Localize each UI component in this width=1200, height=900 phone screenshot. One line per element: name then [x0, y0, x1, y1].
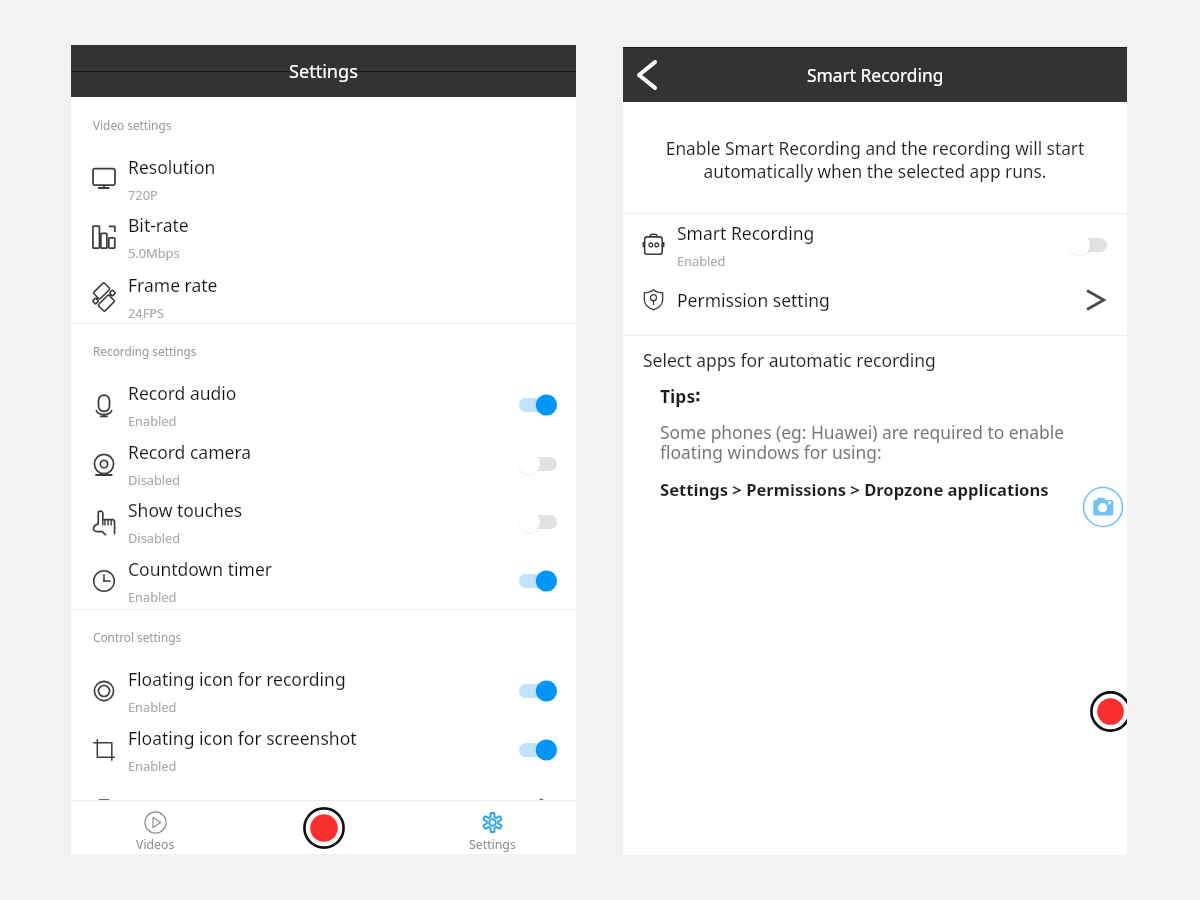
staticText: Videos: [136, 836, 175, 853]
staticText: Floating icon for screenshot: [128, 726, 357, 750]
staticText: Enabled: [128, 698, 177, 715]
staticText: Floating icon for recording: [128, 667, 346, 691]
button[interactable]: Floating icon for recording: [71, 661, 576, 720]
button[interactable]: [519, 680, 557, 702]
staticText: Some phones (eg: Huawei) are required to…: [660, 420, 1065, 465]
staticText: 720P: [128, 186, 158, 203]
staticText: Record camera: [128, 440, 252, 464]
button[interactable]: Camera: [1083, 487, 1123, 527]
staticText: Smart Recording: [807, 63, 944, 87]
button[interactable]: Resolution: [71, 149, 576, 208]
button[interactable]: Record: [303, 807, 345, 849]
button[interactable]: Frame rate: [71, 267, 576, 326]
button[interactable]: [519, 453, 557, 475]
staticText: Settings: [469, 836, 516, 853]
button[interactable]: Settings: [408, 801, 576, 854]
staticText: Select apps for automatic recording: [643, 348, 936, 372]
button[interactable]: Countdown timer: [71, 551, 576, 610]
staticText: Video settings: [93, 117, 172, 133]
button[interactable]: Smart Recording: [623, 215, 1127, 275]
staticText: Smart Recording: [677, 221, 815, 245]
staticText: Enable Smart Recording and the recording…: [623, 137, 1127, 183]
staticText: Screen Recording: [128, 797, 272, 821]
button[interactable]: Back: [628, 56, 666, 94]
button[interactable]: [519, 511, 557, 533]
staticText: Resolution: [128, 155, 216, 179]
staticText: Enabled: [128, 588, 177, 605]
staticText: Enabled: [677, 252, 726, 269]
staticText: Settings: [289, 59, 358, 84]
button[interactable]: Videos: [71, 801, 240, 854]
staticText: Tips∶: [660, 384, 701, 408]
button[interactable]: Floating icon for screenshot: [71, 720, 576, 779]
staticText: Settings > Permissions > Dropzone applic…: [660, 478, 1049, 501]
button[interactable]: Show touches: [71, 492, 576, 551]
staticText: Enabled: [128, 412, 177, 429]
staticText: Disabled: [128, 529, 181, 546]
staticText: Record audio: [128, 381, 237, 405]
staticText: Frame rate: [128, 273, 218, 297]
button[interactable]: Record camera: [71, 434, 576, 493]
button[interactable]: Bit-rate: [71, 207, 576, 266]
staticText: Recording settings: [93, 343, 197, 359]
staticText: Control settings: [93, 629, 182, 645]
staticText: 5.0Mbps: [128, 244, 180, 261]
staticText: Show touches: [128, 498, 243, 522]
button[interactable]: [519, 394, 557, 416]
staticText: Disabled: [128, 471, 181, 488]
button[interactable]: Record audio: [71, 375, 576, 434]
staticText: Permission setting: [677, 288, 830, 312]
staticText: 24FPS: [128, 304, 165, 321]
button[interactable]: Permission setting: [623, 275, 1127, 324]
button[interactable]: Record: [1090, 691, 1127, 732]
button[interactable]: [1069, 234, 1107, 256]
staticText: Bit-rate: [128, 213, 189, 237]
button[interactable]: [519, 739, 557, 761]
staticText: Enabled: [128, 757, 177, 774]
button[interactable]: Screen Recording: [71, 779, 576, 838]
button[interactable]: [519, 570, 557, 592]
staticText: Countdown timer: [128, 557, 273, 581]
